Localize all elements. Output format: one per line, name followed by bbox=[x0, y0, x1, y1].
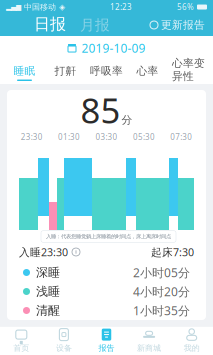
button[interactable]: 新商城 bbox=[128, 326, 170, 354]
staticText: 首页 bbox=[13, 343, 29, 353]
staticText: 日报 bbox=[34, 14, 66, 34]
staticText: 我的 bbox=[184, 343, 200, 353]
staticText: 中国移动 bbox=[24, 2, 56, 12]
staticText: 2小时05分 bbox=[133, 264, 190, 280]
button[interactable]: 心率 bbox=[127, 60, 168, 84]
button[interactable]: 打鼾 bbox=[45, 60, 86, 84]
staticText: 4小时20分 bbox=[133, 283, 190, 299]
staticText: 23:30 bbox=[21, 132, 43, 142]
staticText: 新商城 bbox=[137, 343, 161, 353]
staticText: 打鼾 bbox=[54, 64, 76, 77]
staticText: 12:23 bbox=[110, 2, 132, 12]
staticText: 03:30 bbox=[95, 132, 117, 142]
staticText: 呼吸率 bbox=[90, 64, 123, 77]
button[interactable]: 心率变异性 bbox=[168, 55, 209, 89]
button[interactable]: 设备 bbox=[43, 326, 85, 354]
button[interactable]: 睡眠 bbox=[4, 60, 45, 84]
button[interactable]: 更新报告 bbox=[150, 18, 213, 31]
staticText: 85 bbox=[80, 87, 120, 133]
staticText: 心率 bbox=[136, 64, 158, 77]
button[interactable]: 报告 bbox=[85, 326, 128, 354]
button[interactable]: 我的 bbox=[170, 326, 213, 354]
staticText: 入睡：代表您睡觉躺上床睡着的时间点，床上离床时间点 bbox=[46, 233, 171, 240]
staticText: 01:30 bbox=[58, 132, 80, 142]
staticText: 设备 bbox=[56, 343, 72, 353]
staticText: 更新报告 bbox=[161, 18, 205, 31]
staticText: 睡眠 bbox=[13, 64, 35, 77]
staticText: 入睡23:30 bbox=[19, 245, 68, 259]
staticText: 心率变异性 bbox=[172, 57, 205, 83]
staticText: 05:30 bbox=[133, 132, 155, 142]
staticText: 报告 bbox=[98, 343, 114, 353]
button[interactable]: 日报 bbox=[30, 14, 70, 36]
staticText: 起床7:30 bbox=[151, 245, 194, 259]
staticText: 分 bbox=[121, 113, 132, 126]
staticText: 浅睡 bbox=[36, 284, 60, 299]
staticText: ◈ bbox=[59, 2, 65, 12]
button[interactable]: 首页 bbox=[0, 326, 43, 354]
button[interactable]: 月报 bbox=[70, 16, 120, 34]
staticText: 清醒 bbox=[36, 303, 60, 318]
staticText: 07:30 bbox=[170, 132, 192, 142]
staticText: 56% bbox=[177, 2, 194, 12]
staticText: 月报 bbox=[80, 16, 110, 34]
staticText: 2019-10-09 bbox=[81, 40, 145, 56]
staticText: ▂▄▆ bbox=[6, 3, 21, 11]
button[interactable]: 呼吸率 bbox=[86, 60, 127, 84]
staticText: 深睡 bbox=[36, 265, 60, 280]
staticText: 1小时35分 bbox=[133, 302, 190, 318]
button[interactable]: 2019-10-09 bbox=[0, 36, 213, 60]
